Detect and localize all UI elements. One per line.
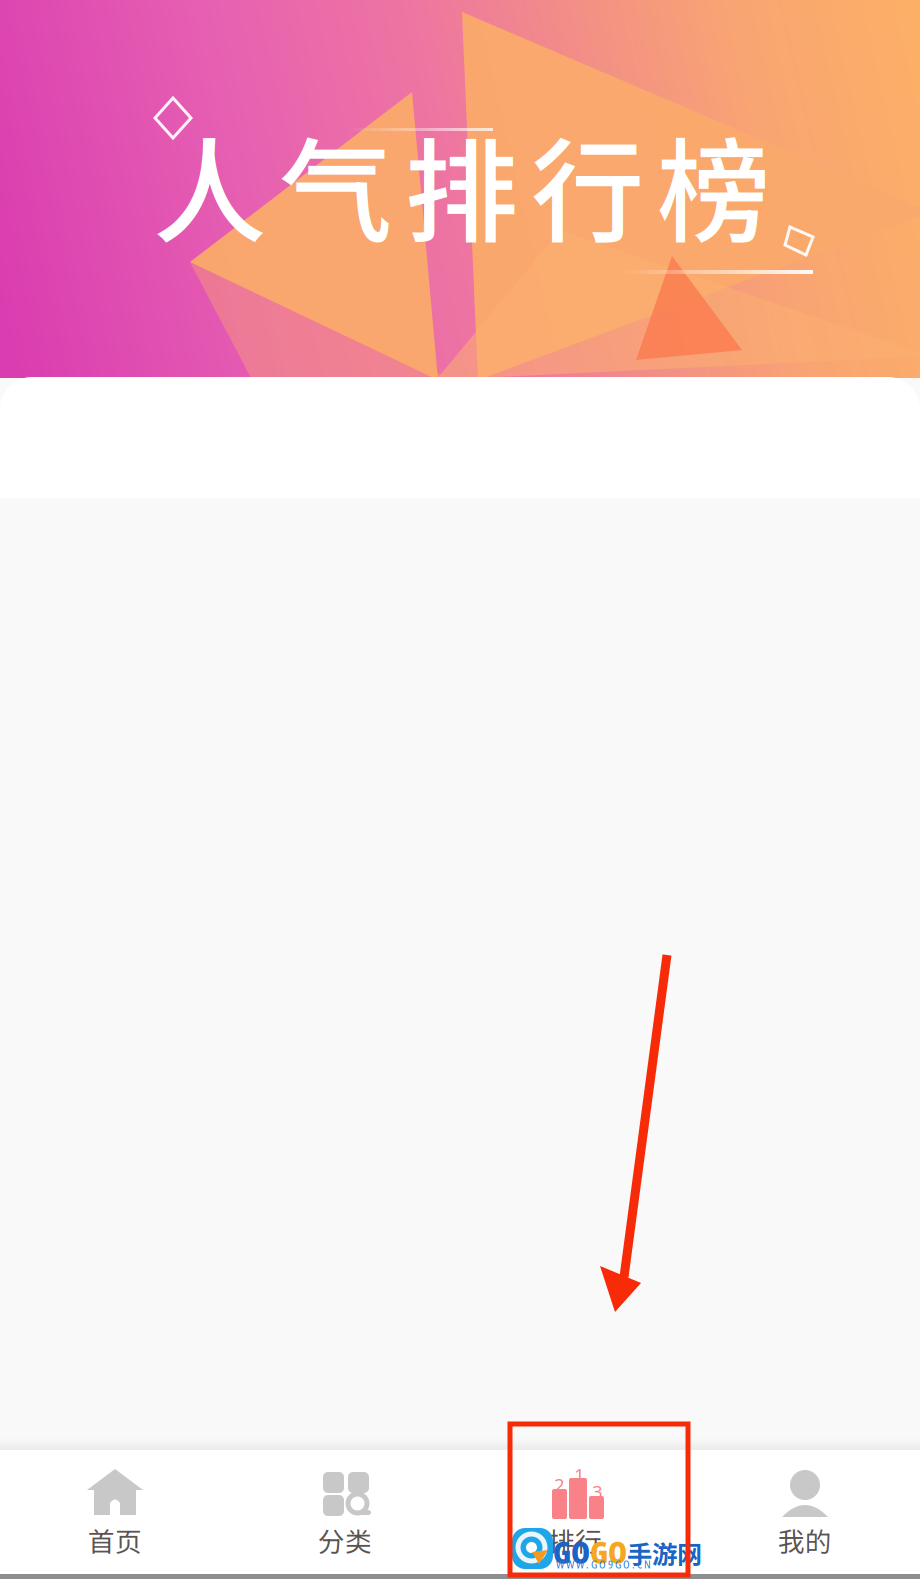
staticText: 分类 bbox=[318, 1521, 372, 1559]
staticText: 人气排行榜 bbox=[153, 102, 770, 266]
staticText: GO bbox=[553, 1531, 590, 1573]
staticText: W W W . G O 9 G O . C N bbox=[556, 1557, 651, 1571]
staticText: 1 bbox=[574, 1462, 585, 1487]
staticText: 3 bbox=[592, 1479, 603, 1504]
staticText: 手游网 bbox=[627, 1534, 702, 1571]
staticText: 我的 bbox=[778, 1521, 832, 1559]
staticText: 排行 bbox=[548, 1521, 602, 1559]
staticText: 2 bbox=[554, 1472, 565, 1497]
staticText: 首页 bbox=[88, 1521, 142, 1559]
button[interactable]: 首页 bbox=[0, 1450, 230, 1579]
button[interactable]: 我的 bbox=[690, 1450, 920, 1579]
button[interactable]: 2 bbox=[460, 1450, 690, 1579]
button[interactable]: 分类 bbox=[230, 1450, 460, 1579]
staticText: GO bbox=[590, 1531, 627, 1573]
